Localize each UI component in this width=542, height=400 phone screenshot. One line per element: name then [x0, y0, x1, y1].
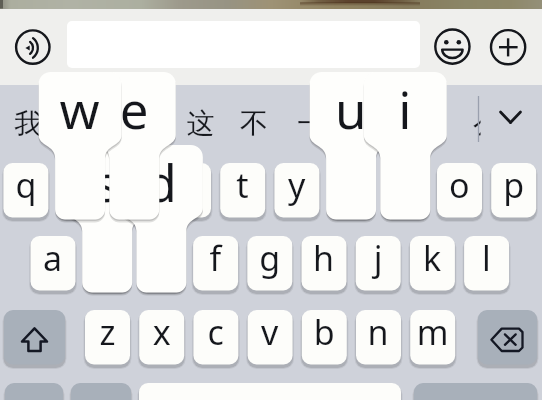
button[interactable]: Shift: [4, 310, 65, 365]
button[interactable]: q: [3, 163, 48, 218]
button[interactable]: m: [410, 310, 455, 365]
button[interactable]: g: [247, 236, 292, 291]
button[interactable]: b: [302, 310, 347, 365]
button[interactable]: j: [356, 236, 401, 291]
button[interactable]: k: [410, 236, 455, 291]
button[interactable]: t: [220, 163, 265, 218]
button[interactable]: n: [356, 310, 401, 365]
button[interactable]: x: [139, 310, 184, 365]
button[interactable]: y: [274, 163, 319, 218]
button[interactable]: z: [85, 310, 130, 365]
button[interactable]: a: [31, 236, 76, 291]
button[interactable]: Add attachment: [490, 29, 526, 65]
button[interactable]: Switch language: [71, 383, 131, 400]
button[interactable]: 我: [4, 95, 54, 141]
button[interactable]: 这: [174, 95, 226, 141]
button[interactable]: u: [329, 163, 374, 218]
button[interactable]: p: [491, 163, 536, 218]
button[interactable]: i: [383, 163, 428, 218]
button[interactable]: 个: [440, 95, 478, 141]
button[interactable]: Emoji: [435, 29, 470, 64]
button[interactable]: Voice input: [16, 29, 51, 64]
button[interactable]: Enter: [414, 383, 537, 400]
button[interactable]: 不: [228, 95, 280, 141]
button[interactable]: v: [248, 310, 293, 365]
button[interactable]: Symbols: [5, 383, 63, 400]
button[interactable]: r: [166, 163, 211, 218]
button[interactable]: o: [437, 163, 482, 218]
button[interactable]: Space: [139, 383, 401, 400]
button[interactable]: f: [193, 236, 238, 291]
button[interactable]: c: [193, 310, 238, 365]
button[interactable]: s: [85, 236, 130, 291]
button[interactable]: Backspace: [478, 310, 537, 365]
button[interactable]: h: [302, 236, 347, 291]
button[interactable]: d: [139, 236, 184, 291]
button[interactable]: 一: [282, 95, 334, 141]
button[interactable]: Expand candidates: [488, 95, 534, 141]
button[interactable]: l: [464, 236, 509, 291]
